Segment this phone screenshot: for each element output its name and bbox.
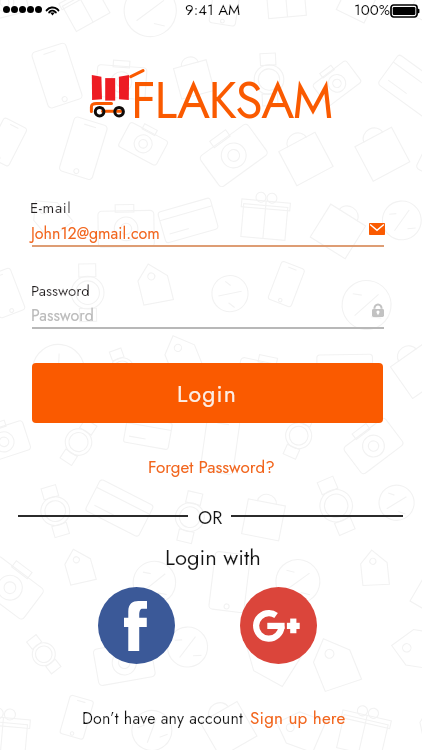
staticText: 9:41 AM — [185, 0, 241, 21]
staticText: E-mail — [30, 197, 72, 219]
button[interactable]: Forget Password? — [138, 451, 285, 484]
button[interactable]: Login with Google Plus — [240, 587, 317, 664]
staticText: Login — [177, 377, 238, 410]
staticText: Password — [31, 280, 90, 302]
staticText: FLAKSAM — [131, 64, 332, 136]
staticText: Login with — [165, 541, 261, 573]
staticText: 100% — [354, 0, 391, 21]
button[interactable]: Login — [32, 363, 383, 423]
staticText: Password — [31, 304, 94, 327]
staticText: Forget Password? — [148, 455, 275, 480]
button[interactable]: Sign up here — [250, 706, 346, 731]
button[interactable]: Login with Facebook — [98, 587, 175, 664]
staticText: Sign up here — [250, 706, 346, 731]
staticText: John12@gmail.com — [31, 222, 160, 245]
staticText: OR — [198, 505, 223, 531]
staticText: Don’t have any account — [82, 707, 244, 730]
